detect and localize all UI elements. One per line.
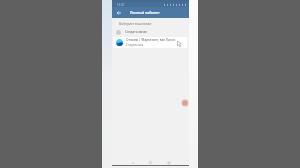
button[interactable]: Home bbox=[147, 159, 154, 166]
staticText: Личный кабинет bbox=[130, 10, 160, 15]
staticText: Выберите ваш канал bbox=[119, 22, 152, 26]
button[interactable]: Back bbox=[114, 8, 123, 17]
staticText: Создать канал bbox=[125, 30, 148, 34]
button[interactable]: Recents bbox=[165, 159, 172, 166]
button[interactable]: Отзывы | Маркетинг, как Лисич bbox=[113, 37, 187, 48]
button[interactable]: Back bbox=[129, 159, 136, 166]
button[interactable]: Create channel bbox=[180, 98, 190, 108]
button[interactable]: Создать канал bbox=[112, 28, 189, 36]
staticText: 14:02 bbox=[117, 3, 125, 7]
staticText: Отзывы | Маркетинг, как Лисич bbox=[126, 38, 176, 42]
staticText: 2 подписчика bbox=[126, 43, 144, 47]
